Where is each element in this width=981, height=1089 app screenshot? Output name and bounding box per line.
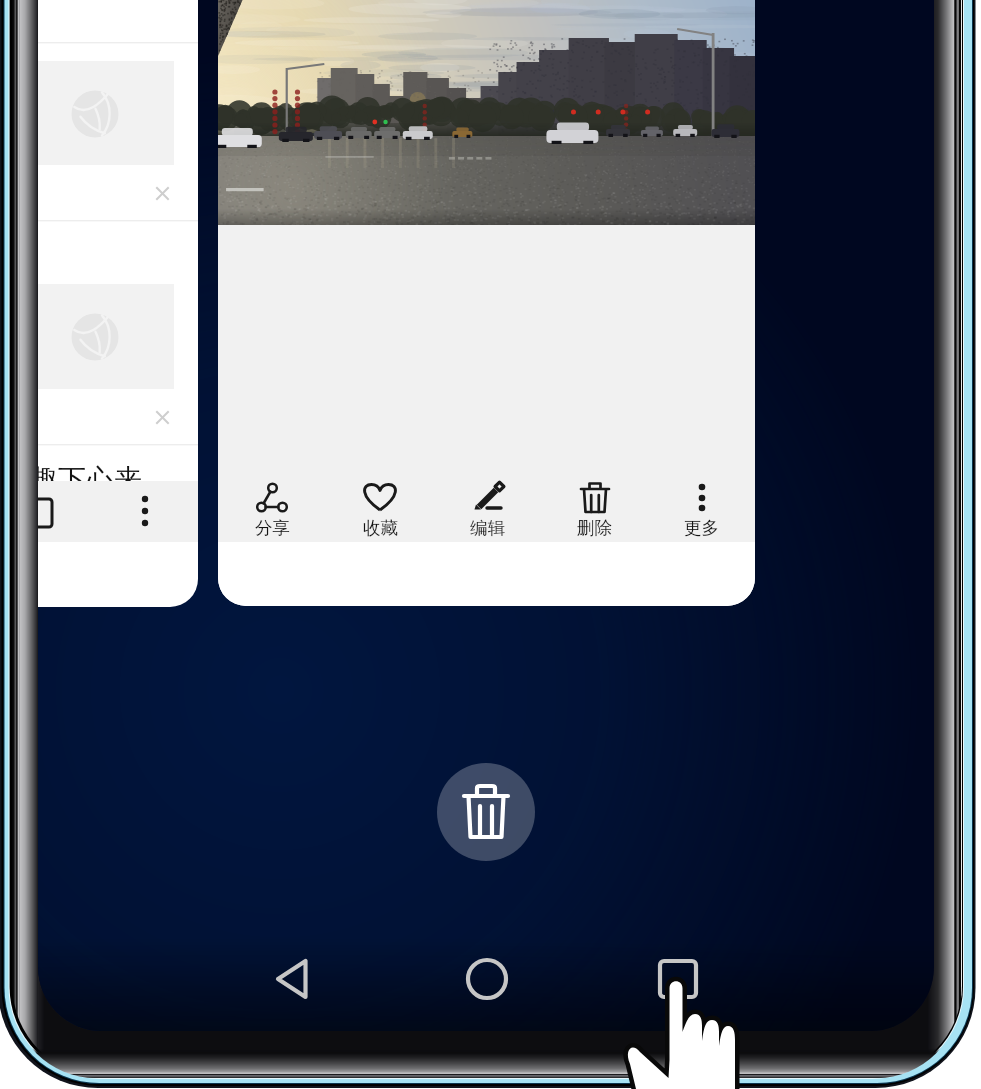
button[interactable]: 分享 [218, 479, 326, 542]
staticText: 更多 [684, 517, 719, 539]
button[interactable]: Back [200, 939, 391, 1019]
button[interactable]: Clear all [437, 763, 535, 861]
staticText: 删除 [577, 517, 612, 539]
button[interactable]: Recent apps [582, 939, 773, 1019]
button[interactable]: 更多 [648, 479, 755, 542]
staticText: 分享 [255, 517, 290, 539]
staticText: 趣下心来 [38, 462, 142, 497]
button[interactable]: 删除 [541, 479, 648, 542]
button[interactable]: 收藏 [326, 479, 434, 542]
button[interactable]: Home [391, 939, 582, 1019]
button[interactable]: 编辑 [434, 479, 541, 542]
button[interactable]: 分享 [218, 0, 755, 606]
staticText: 编辑 [470, 517, 505, 539]
staticText: 收藏 [363, 517, 398, 539]
button[interactable]: 趣下心来 [38, 0, 198, 607]
